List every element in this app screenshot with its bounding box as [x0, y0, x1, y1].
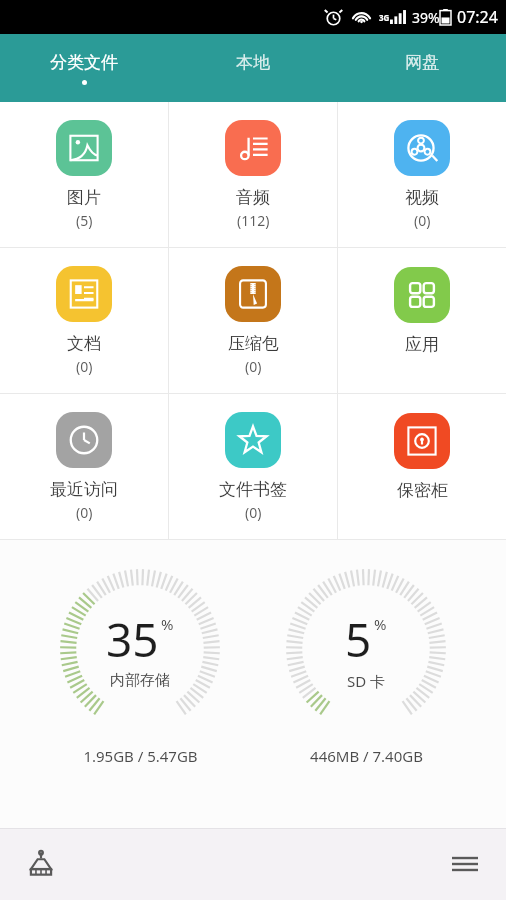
button[interactable]: 网盘	[337, 34, 506, 102]
staticText: 1.95GB / 5.47GB	[83, 746, 198, 766]
button[interactable]: 35	[55, 564, 225, 766]
staticText: 文件书签	[219, 479, 287, 500]
staticText: 3G	[379, 12, 390, 23]
staticText: 音频	[236, 187, 270, 208]
button[interactable]: 压缩包	[169, 248, 337, 393]
staticText: 35	[106, 608, 159, 671]
staticText: (0)	[76, 503, 93, 522]
staticText: (5)	[76, 211, 93, 230]
button[interactable]: 文件书签	[169, 394, 337, 539]
button[interactable]: 视频	[338, 102, 506, 247]
staticText: 最近访问	[50, 479, 118, 500]
staticText: 文档	[67, 333, 101, 354]
button[interactable]: 5	[281, 564, 451, 766]
staticText: (0)	[245, 357, 262, 376]
button[interactable]: 分类文件	[0, 34, 168, 102]
button[interactable]: 音频	[169, 102, 337, 247]
staticText: 446MB / 7.40GB	[310, 746, 423, 766]
button[interactable]: 保密柜	[338, 394, 506, 539]
staticText: 内部存储	[110, 671, 170, 690]
staticText: (0)	[414, 211, 431, 230]
staticText: (0)	[76, 357, 93, 376]
staticText: 07:24	[457, 6, 498, 28]
button[interactable]: 本地	[168, 34, 337, 102]
staticText: 应用	[405, 334, 439, 355]
button[interactable]: 文档	[0, 248, 168, 393]
staticText: (0)	[245, 503, 262, 522]
staticText: %	[161, 614, 174, 634]
staticText: 保密柜	[397, 480, 448, 501]
staticText: 39%	[412, 8, 440, 27]
staticText: 网盘	[405, 52, 439, 73]
staticText: SD 卡	[347, 671, 386, 691]
button[interactable]: 应用	[338, 248, 506, 393]
staticText: %	[374, 614, 387, 634]
button[interactable]: 图片	[0, 102, 168, 247]
staticText: (112)	[237, 211, 270, 230]
staticText: 图片	[67, 187, 101, 208]
button[interactable]: Clean	[18, 841, 64, 887]
button[interactable]: 最近访问	[0, 394, 168, 539]
staticText: 压缩包	[228, 333, 279, 354]
staticText: 分类文件	[50, 52, 118, 73]
staticText: 5	[345, 608, 372, 671]
staticText: 本地	[236, 52, 270, 73]
staticText: 视频	[405, 187, 439, 208]
button[interactable]: Menu	[442, 841, 488, 887]
